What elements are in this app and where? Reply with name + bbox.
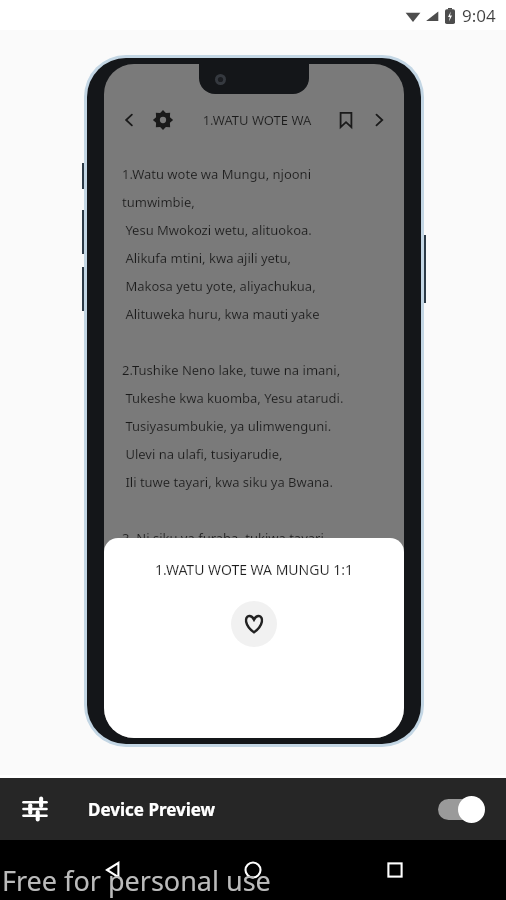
button[interactable]: Back [98, 855, 128, 885]
staticText: Free for personal use [2, 862, 271, 899]
button[interactable]: Preview settings [18, 792, 52, 826]
staticText: Alituweka huru, kwa mauti yake [122, 305, 320, 323]
staticText: 9:04 [462, 4, 496, 27]
button[interactable]: Recents [380, 855, 410, 885]
button[interactable]: Previous [116, 107, 142, 133]
button[interactable]: Bookmark [332, 106, 360, 134]
staticText: Yesu Mwokozi wetu, alituokoa. [122, 221, 312, 239]
button[interactable]: Toggle device preview [434, 792, 486, 826]
staticText: 1.Watu wote wa Mungu, njooni [122, 165, 312, 183]
staticText: Makosa yetu yote, aliyachukua, [122, 277, 316, 295]
staticText: Device Preview [88, 798, 216, 821]
button[interactable]: Home [238, 855, 268, 885]
staticText: Tukeshe kwa kuomba, Yesu atarudi. [122, 389, 344, 407]
staticText: Tusiyasumbukie, ya ulimwenguni. [122, 417, 332, 435]
button[interactable]: Settings [148, 105, 178, 135]
staticText: tumwimbie, [122, 193, 195, 211]
staticText: Alikufa mtini, kwa ajili yetu, [122, 249, 292, 267]
staticText: Ulevi na ulafi, tusiyarudie, [122, 445, 283, 463]
staticText: Ili tuwe tayari, kwa siku ya Bwana. [122, 473, 333, 491]
staticText: 1.WATU WOTE WA MUNGU 1 [190, 111, 324, 129]
button[interactable]: Next [366, 107, 392, 133]
staticText: 3. Ni siku ya furaha, tukiwa tayari, [122, 529, 328, 547]
staticText: 2.Tushike Neno lake, tuwe na imani, [122, 361, 341, 379]
button[interactable]: Favourite [231, 601, 277, 647]
staticText: 1.WATU WOTE WA MUNGU 1:1 [155, 560, 354, 579]
